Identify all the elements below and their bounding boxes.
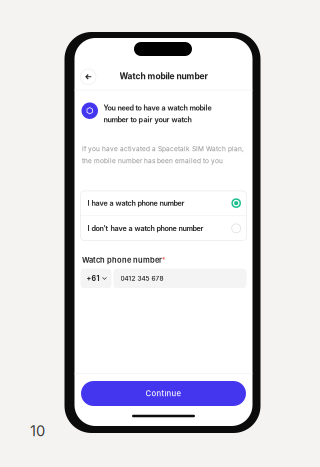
- staticText: 10: [30, 422, 45, 440]
- staticText: +61: [86, 274, 99, 283]
- staticText: I have a watch phone number: [87, 199, 184, 207]
- button[interactable]: I have a watch phone number: [80, 191, 246, 215]
- staticText: You need to have a watch mobile number t…: [103, 103, 211, 124]
- staticText: Continue: [145, 389, 181, 398]
- staticText: 0412 345 678: [120, 274, 163, 282]
- button[interactable]: I don't have a watch phone number: [80, 216, 246, 241]
- staticText: Watch mobile number: [119, 71, 207, 81]
- button[interactable]: Back: [79, 67, 98, 86]
- button[interactable]: Continue: [81, 381, 246, 406]
- staticText: If you have activated a Spacetalk SIM Wa…: [82, 145, 244, 165]
- staticText: *: [162, 256, 165, 264]
- button[interactable]: +61: [80, 269, 111, 288]
- staticText: I don't have a watch phone number: [87, 224, 203, 233]
- button[interactable]: 0412 345 678: [113, 269, 246, 288]
- staticText: Watch phone number: [82, 256, 162, 265]
